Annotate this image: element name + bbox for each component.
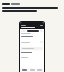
button[interactable]: Tab 1 — [22, 69, 27, 71]
button[interactable] — [21, 41, 43, 43]
button[interactable]: App header — [20, 22, 44, 29]
button[interactable] — [21, 36, 43, 37]
button[interactable]: Tab 3 — [37, 69, 42, 71]
button[interactable]: Search — [27, 30, 39, 32]
button[interactable] — [21, 47, 43, 50]
button[interactable]: Tab 2 — [30, 69, 35, 71]
